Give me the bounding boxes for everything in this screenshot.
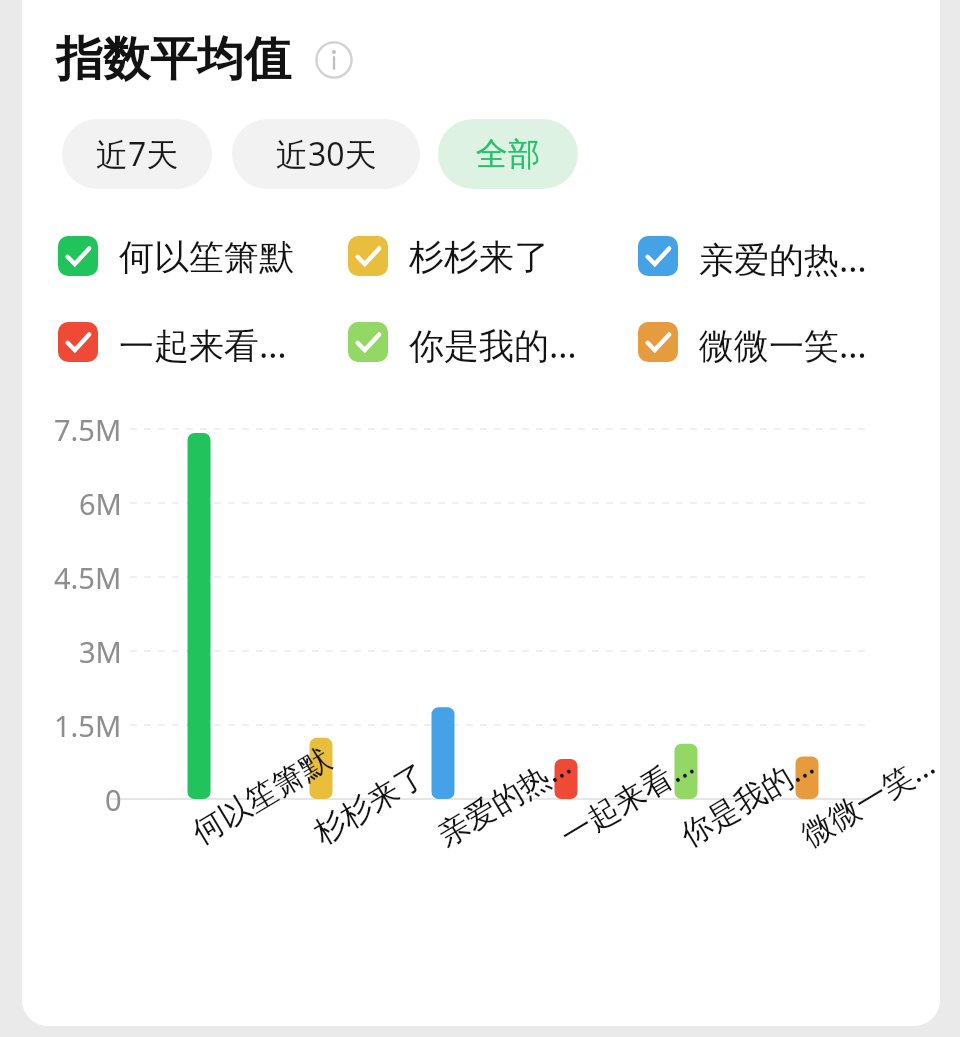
staticText: 近30天 <box>276 132 377 176</box>
button[interactable]: 近7天 <box>62 119 212 189</box>
button[interactable]: 你是我的… <box>348 321 577 363</box>
button[interactable]: 杉杉来了 <box>348 235 549 277</box>
staticText: 指数平均值 <box>56 30 291 89</box>
staticText: 近7天 <box>96 132 179 176</box>
staticText: 微微一笑… <box>699 321 867 363</box>
staticText: 何以笙箫默 <box>119 235 294 277</box>
button[interactable]: 近30天 <box>232 119 420 189</box>
staticText: 杉杉来了 <box>409 235 549 277</box>
staticText: 你是我的… <box>409 321 577 363</box>
button[interactable]: 全部 <box>438 119 578 189</box>
button[interactable]: 说明 <box>315 41 353 79</box>
button[interactable]: 微微一笑… <box>638 321 867 363</box>
staticText: 亲爱的热… <box>699 235 867 277</box>
staticText: 一起来看… <box>119 321 287 363</box>
button[interactable]: 亲爱的热… <box>638 235 867 277</box>
button[interactable]: 一起来看… <box>58 321 287 363</box>
staticText: 全部 <box>476 134 540 174</box>
button[interactable]: 何以笙箫默 <box>58 235 294 277</box>
